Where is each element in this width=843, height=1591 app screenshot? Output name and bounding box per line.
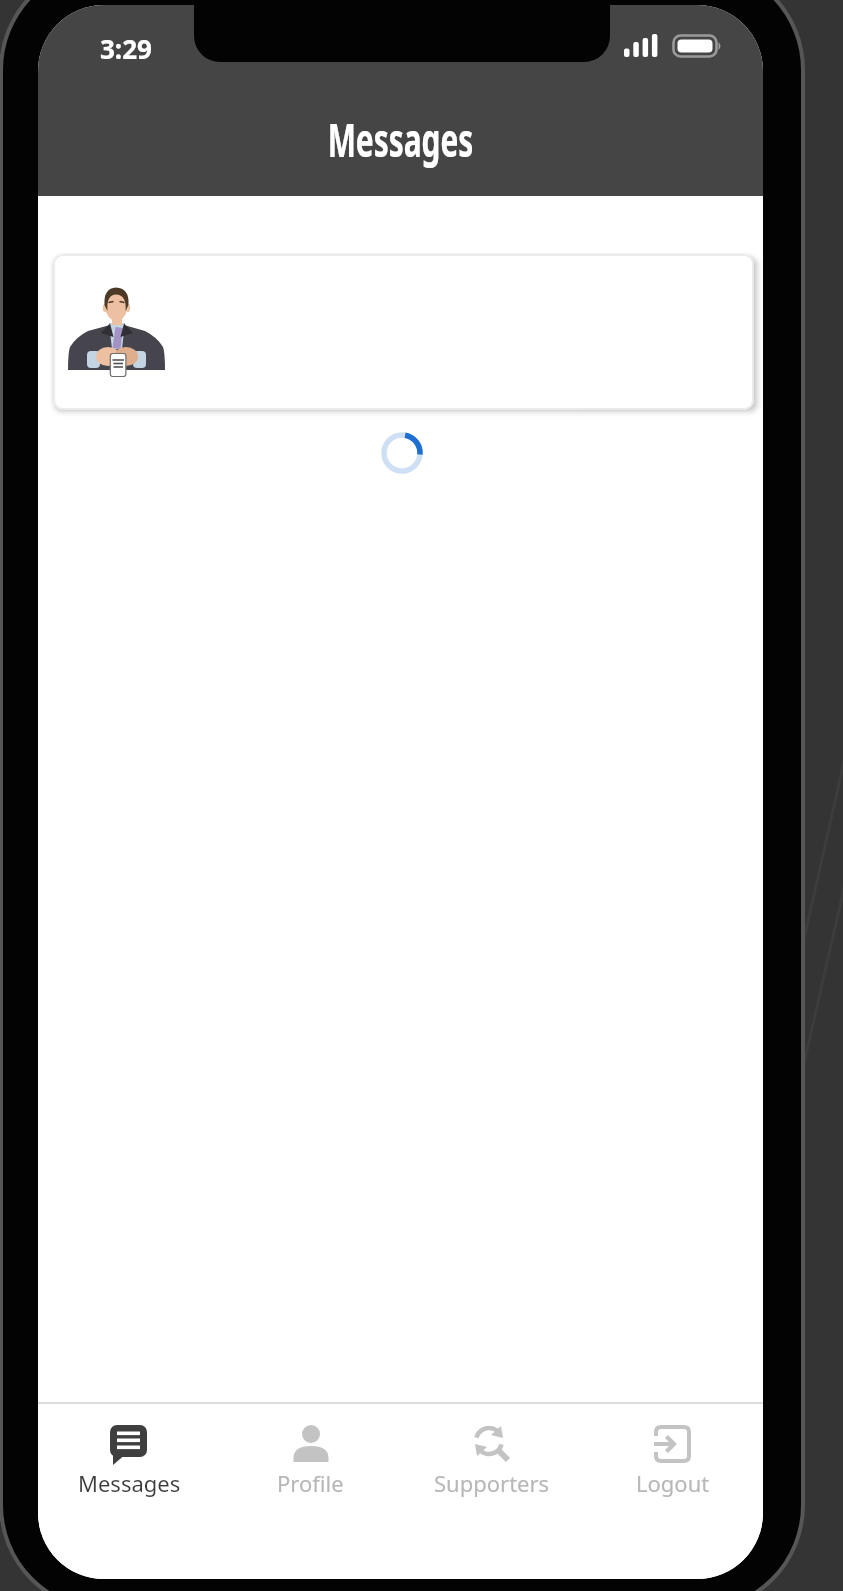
button[interactable]: Logout xyxy=(582,1404,763,1498)
button[interactable]: Profile xyxy=(220,1404,401,1498)
staticText: Profile xyxy=(277,1468,344,1498)
staticText: Messages xyxy=(165,108,636,171)
staticText: Logout xyxy=(636,1468,710,1498)
button[interactable] xyxy=(53,254,754,410)
staticText: 3:29 xyxy=(100,31,152,66)
button[interactable]: Supporters xyxy=(401,1404,582,1498)
staticText: Supporters xyxy=(434,1468,550,1498)
button[interactable]: Messages xyxy=(38,1404,220,1498)
staticText: Messages xyxy=(78,1468,181,1498)
